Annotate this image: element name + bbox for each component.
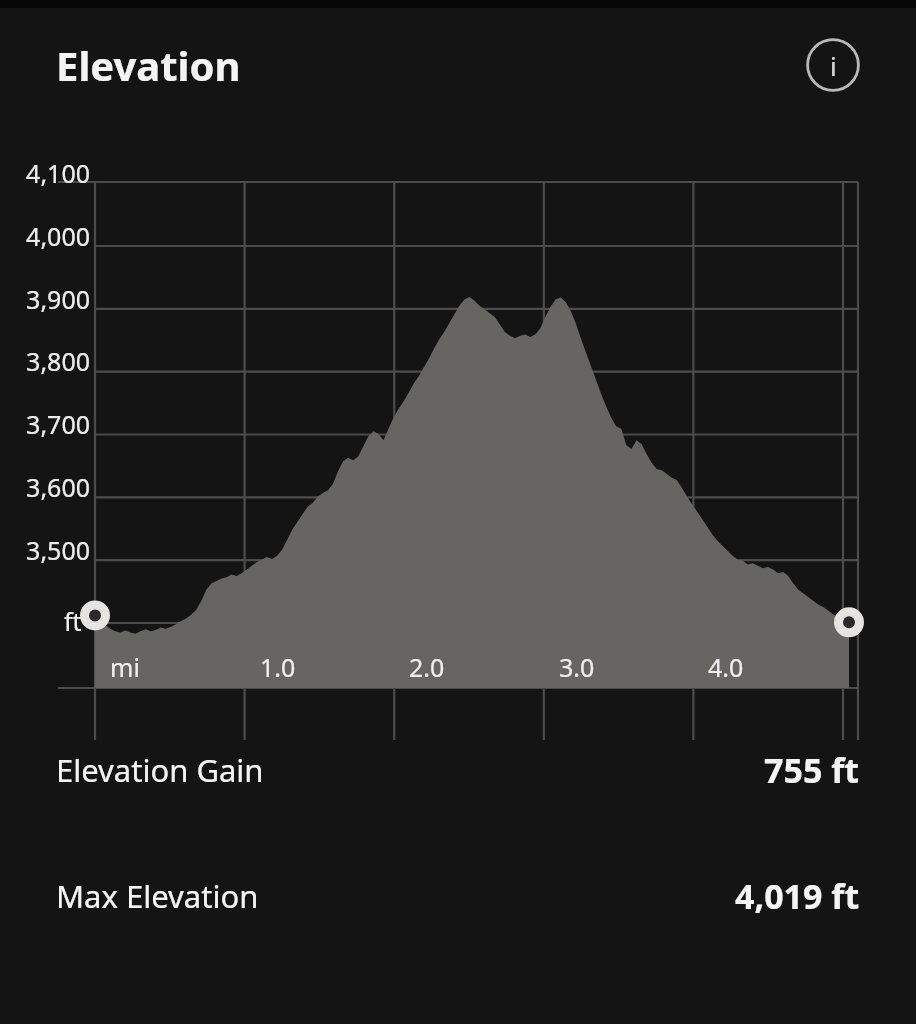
staticText: mi [110, 650, 140, 684]
staticText: 3,700 [26, 407, 90, 441]
staticText: Elevation Gain [56, 749, 264, 791]
staticText: 3,800 [26, 344, 90, 378]
staticText: 4,019 ft [735, 873, 860, 919]
staticText: 2.0 [409, 650, 445, 684]
staticText: 4,100 [26, 156, 90, 190]
staticText: i [830, 48, 837, 83]
staticText: 3,600 [26, 470, 90, 504]
staticText: 3,500 [26, 533, 90, 567]
staticText: 3,900 [26, 282, 90, 316]
button[interactable]: Info [806, 38, 860, 92]
button[interactable]: Max Elevation [0, 864, 916, 928]
staticText: 3.0 [559, 650, 595, 684]
staticText: ft [64, 604, 82, 638]
button[interactable]: Elevation Gain [0, 738, 916, 802]
staticText: 755 ft [764, 747, 860, 793]
staticText: 1.0 [260, 650, 296, 684]
staticText: 4.0 [708, 650, 744, 684]
staticText: Max Elevation [56, 875, 259, 917]
staticText: 4,000 [26, 219, 90, 253]
staticText: Elevation [56, 38, 241, 92]
